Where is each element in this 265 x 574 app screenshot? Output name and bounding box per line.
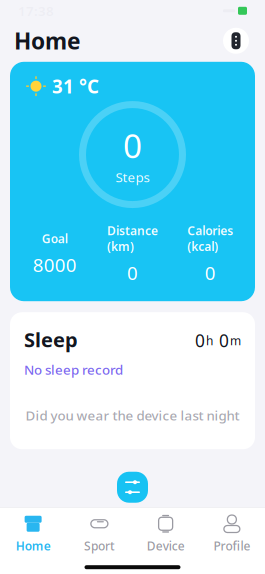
staticText: 0	[205, 260, 216, 285]
staticText: 0	[127, 260, 138, 285]
staticText: Calories (kcal)	[187, 223, 233, 254]
staticText: 31 °C	[52, 74, 99, 99]
staticText: Did you wear the device last night	[25, 406, 239, 424]
staticText: Device	[147, 538, 185, 554]
staticText: h	[206, 333, 213, 348]
staticText: Sport	[84, 538, 115, 554]
staticText: 0	[195, 329, 205, 352]
staticText: 0	[123, 123, 142, 167]
staticText: Distance (km)	[107, 223, 158, 254]
staticText: Sleep	[24, 326, 78, 353]
staticText: m	[230, 333, 241, 348]
staticText: No sleep record	[24, 361, 123, 378]
button[interactable]: Profile	[199, 515, 265, 553]
button[interactable]: Sport	[66, 515, 132, 553]
staticText: Goal	[42, 230, 68, 246]
staticText: Home	[16, 538, 51, 554]
staticText: 8000	[33, 252, 77, 277]
staticText: Steps	[115, 168, 149, 186]
staticText: 0	[214, 329, 229, 352]
staticText: Home	[14, 26, 81, 56]
button[interactable]: Adjust	[112, 467, 152, 507]
button[interactable]: Device	[221, 26, 251, 56]
button[interactable]: Home	[0, 515, 66, 553]
staticText: Profile	[213, 538, 250, 554]
button[interactable]: Device	[132, 515, 199, 553]
